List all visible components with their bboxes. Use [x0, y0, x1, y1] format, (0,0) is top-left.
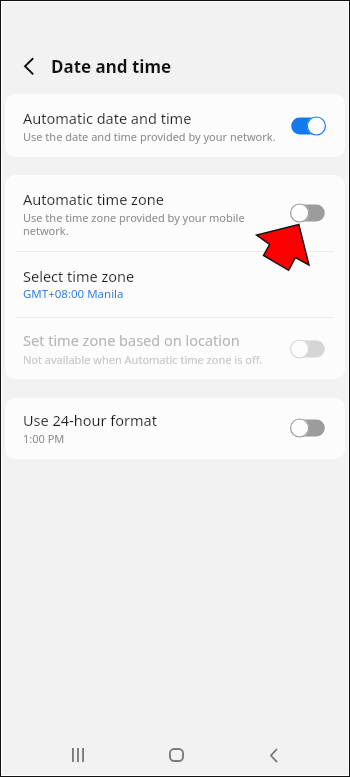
button[interactable]: Home: [127, 735, 225, 775]
button[interactable]: Use 24-hour format: [5, 398, 345, 459]
button[interactable]: Use 24-hour format: [290, 418, 326, 438]
button[interactable]: Automatic time zone: [5, 175, 345, 251]
staticText: Date and time: [51, 55, 172, 78]
button[interactable]: Navigate up: [15, 54, 37, 76]
button[interactable]: Automatic time zone: [290, 203, 326, 223]
button[interactable]: Recent apps: [29, 735, 127, 775]
staticText: GMT+08:00 Manila: [23, 286, 124, 302]
button[interactable]: Set time zone based on location: [5, 318, 345, 379]
button[interactable]: Back: [225, 735, 323, 775]
staticText: Use the date and time provided by your n…: [23, 129, 276, 144]
staticText: Set time zone based on location: [23, 330, 240, 350]
staticText: Not available when Automatic time zone i…: [23, 352, 263, 367]
button[interactable]: Select time zone: [5, 252, 345, 317]
staticText: Automatic time zone: [23, 189, 164, 209]
button[interactable]: Set time zone based on location: [290, 339, 326, 359]
staticText: Automatic date and time: [23, 108, 192, 128]
staticText: Use the time zone provided by your mobil…: [23, 210, 276, 238]
button[interactable]: Automatic date and time: [5, 94, 345, 157]
button[interactable]: Automatic date and time: [290, 116, 326, 136]
staticText: 1:00 PM: [23, 431, 65, 446]
staticText: Select time zone: [23, 266, 135, 286]
staticText: Use 24-hour format: [23, 410, 157, 430]
